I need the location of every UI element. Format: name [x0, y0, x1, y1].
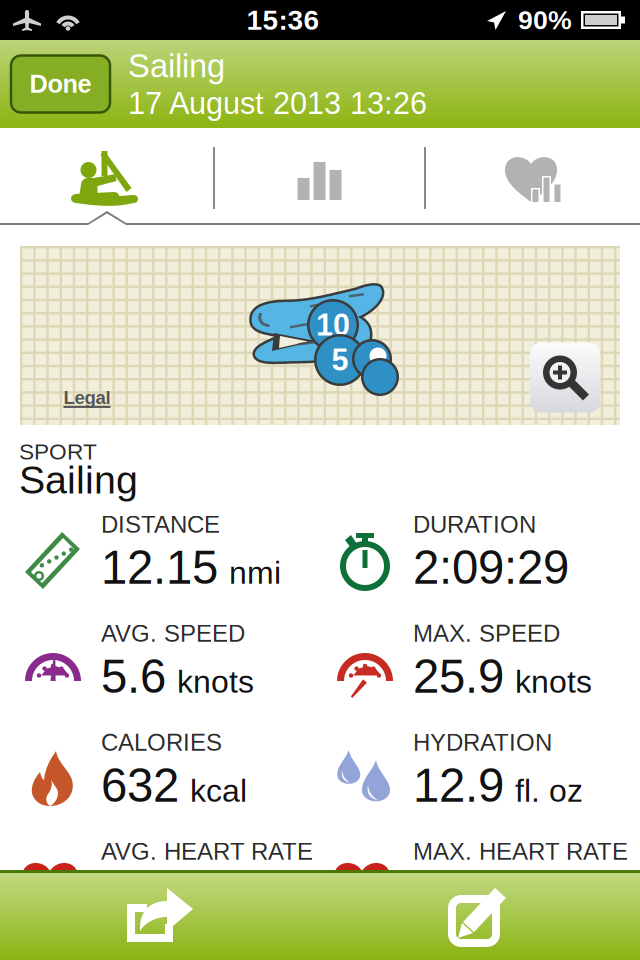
button[interactable]: Heart rate — [426, 131, 640, 225]
staticText: 632 — [101, 759, 179, 812]
staticText: nmi — [229, 555, 281, 591]
staticText: 5.6 — [101, 650, 166, 703]
staticText: 15:36 — [246, 4, 319, 36]
staticText: CALORIES — [101, 729, 222, 756]
staticText: knots — [177, 664, 254, 700]
button[interactable]: Zoom in — [530, 342, 600, 412]
button[interactable]: Done — [11, 55, 110, 112]
staticText: SPORT — [19, 439, 97, 464]
button[interactable]: Legal — [63, 387, 110, 408]
staticText: MAX. HEART RATE — [413, 838, 628, 865]
staticText: 25.9 — [413, 650, 504, 703]
staticText: Sailing — [128, 48, 225, 84]
staticText: MAX. SPEED — [413, 620, 560, 647]
staticText: 12.9 — [413, 759, 504, 812]
button[interactable]: Charts — [215, 131, 424, 225]
button[interactable]: Activity — [0, 131, 213, 225]
staticText: 2:09:29 — [413, 541, 569, 594]
button[interactable]: Share — [0, 870, 320, 960]
staticText: Done — [29, 70, 91, 98]
staticText: AVG. HEART RATE — [101, 838, 313, 865]
staticText: 10 — [316, 308, 350, 342]
staticText: 5 — [331, 343, 348, 377]
staticText: AVG. SPEED — [101, 620, 245, 647]
staticText: HYDRATION — [413, 729, 552, 756]
staticText: fl. oz — [515, 773, 583, 809]
staticText: 17 August 2013 13:26 — [128, 86, 427, 120]
staticText: 90% — [518, 5, 572, 35]
staticText: knots — [515, 664, 592, 700]
staticText: kcal — [190, 773, 247, 809]
staticText: Legal — [63, 387, 110, 408]
staticText: Sailing — [19, 458, 138, 502]
button[interactable]: Edit — [320, 870, 640, 960]
staticText: DISTANCE — [101, 511, 220, 538]
staticText: DURATION — [413, 511, 536, 538]
staticText: 12.15 — [101, 541, 218, 594]
